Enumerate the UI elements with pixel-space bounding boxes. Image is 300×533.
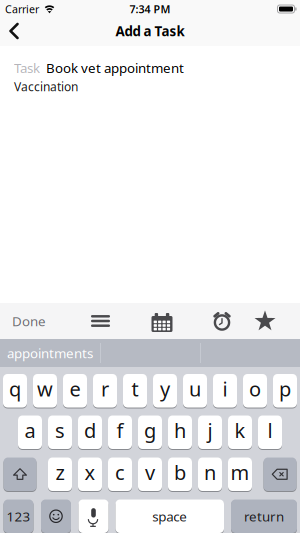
button[interactable]: p — [273, 373, 297, 408]
button[interactable]: Shift — [3, 457, 36, 491]
button[interactable]: q — [3, 373, 27, 408]
staticText: f — [116, 417, 123, 444]
button[interactable]: h — [168, 415, 192, 449]
staticText: u — [189, 375, 201, 402]
button[interactable]: g — [138, 415, 162, 449]
staticText: i — [222, 375, 227, 402]
staticText: space — [152, 507, 187, 525]
staticText: w — [37, 375, 53, 402]
button[interactable]: t — [123, 373, 147, 408]
button[interactable]: r — [93, 373, 117, 408]
button[interactable]: Delete — [263, 457, 296, 491]
staticText: appointments — [7, 344, 93, 362]
staticText: 123 — [6, 507, 30, 525]
button[interactable]: e — [63, 373, 87, 408]
staticText: 7:34 PM — [129, 2, 170, 16]
staticText: return — [244, 507, 284, 525]
staticText: z — [55, 459, 64, 486]
button[interactable]: Lists — [80, 303, 120, 339]
staticText: d — [84, 417, 96, 444]
button[interactable]: x — [78, 457, 102, 491]
button[interactable]: y — [153, 373, 177, 408]
button[interactable]: w — [33, 373, 57, 408]
button[interactable]: l — [258, 415, 282, 449]
button[interactable]: appointments — [0, 339, 100, 367]
staticText: Book vet appointment — [46, 59, 184, 77]
button[interactable]: j — [198, 415, 222, 449]
button[interactable]: Dictate — [78, 499, 108, 533]
button[interactable]: d — [78, 415, 102, 449]
button[interactable]: o — [243, 373, 267, 408]
button[interactable]: Reminder — [202, 303, 242, 339]
button[interactable]: i — [213, 373, 237, 408]
staticText: h — [174, 417, 186, 444]
button[interactable]: m — [228, 457, 252, 491]
staticText: Vaccination — [14, 79, 78, 95]
button[interactable]: b — [168, 457, 192, 491]
button[interactable]: v — [138, 457, 162, 491]
button[interactable]: c — [108, 457, 132, 491]
button[interactable]: a — [18, 415, 42, 449]
staticText: r — [101, 375, 109, 402]
staticText: b — [174, 459, 186, 486]
staticText: Carrier — [5, 2, 39, 16]
staticText: g — [144, 417, 156, 444]
button[interactable]: Due date — [142, 303, 182, 339]
button[interactable]: Done — [0, 303, 58, 339]
staticText: y — [160, 375, 170, 402]
button[interactable]: z — [48, 457, 72, 491]
button[interactable]: f — [108, 415, 132, 449]
staticText: j — [207, 417, 212, 444]
staticText: Task — [14, 59, 40, 77]
staticText: e — [69, 375, 80, 402]
button[interactable]: s — [48, 415, 72, 449]
button[interactable]: n — [198, 457, 222, 491]
staticText: p — [279, 375, 291, 402]
staticText: t — [131, 375, 138, 402]
staticText: l — [267, 417, 272, 444]
button[interactable]: u — [183, 373, 207, 408]
staticText: Done — [12, 312, 46, 330]
staticText: v — [145, 459, 155, 486]
staticText: k — [234, 417, 245, 444]
button[interactable]: space — [115, 499, 224, 533]
staticText: n — [204, 459, 216, 486]
button[interactable]: Priority — [245, 303, 285, 339]
button[interactable]: Back — [0, 18, 19, 43]
staticText: o — [249, 375, 261, 402]
button[interactable]: k — [228, 415, 252, 449]
staticText: x — [84, 459, 95, 486]
staticText: c — [115, 459, 125, 486]
staticText: q — [9, 375, 21, 402]
staticText: m — [230, 459, 249, 486]
staticText: Add a Task — [115, 22, 184, 40]
button[interactable]: Emoji — [41, 499, 71, 533]
staticText: s — [55, 417, 65, 444]
button[interactable]: return — [231, 499, 297, 533]
button[interactable]: 123 — [3, 499, 33, 533]
staticText: a — [24, 417, 35, 444]
